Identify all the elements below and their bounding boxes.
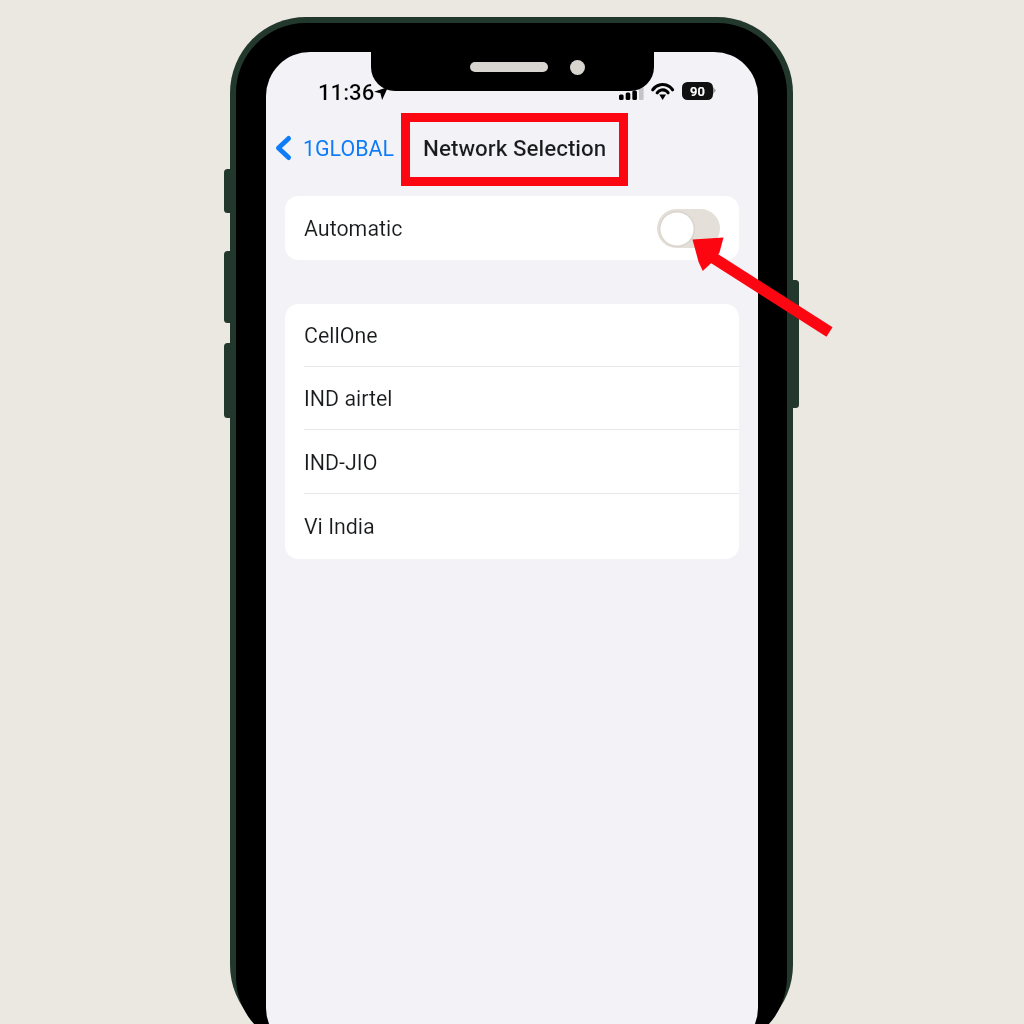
staticText: Network Selection — [423, 135, 607, 161]
staticText: Automatic — [304, 216, 403, 241]
staticText: 90 — [690, 84, 705, 99]
staticText: IND-JIO — [304, 450, 378, 475]
button[interactable]: Vi India — [285, 494, 739, 559]
button[interactable]: Automatic network selection toggle — [657, 209, 720, 248]
staticText: 1GLOBAL — [303, 136, 394, 161]
button[interactable]: IND-JIO — [285, 430, 739, 494]
staticText: CellOne — [304, 323, 378, 348]
button[interactable]: IND airtel — [285, 367, 739, 430]
staticText: Vi India — [304, 514, 375, 539]
button[interactable]: CellOne — [285, 304, 739, 367]
button[interactable]: 1GLOBAL — [276, 128, 394, 168]
staticText: 11:36 — [318, 79, 375, 105]
staticText: IND airtel — [304, 386, 393, 411]
button[interactable]: Automatic — [285, 196, 739, 260]
